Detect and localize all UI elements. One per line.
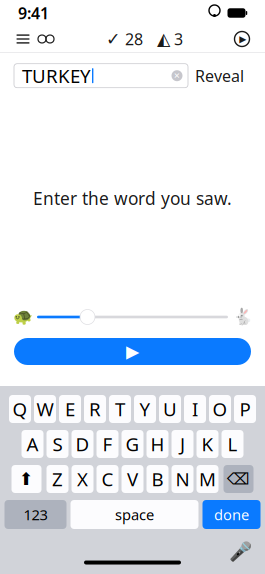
staticText: 123	[23, 505, 47, 524]
button[interactable]: space	[70, 500, 198, 529]
staticText: ✓	[106, 29, 121, 49]
button[interactable]: N	[171, 465, 193, 493]
staticText: T	[115, 397, 125, 421]
button[interactable]: R	[84, 395, 106, 423]
button[interactable]: W	[34, 395, 56, 423]
button[interactable]: Q	[9, 395, 31, 423]
button[interactable]: Shift	[11, 465, 41, 493]
button[interactable]: I	[184, 395, 206, 423]
button[interactable]: L	[221, 430, 243, 458]
staticText: C	[101, 467, 113, 491]
staticText: L	[227, 432, 237, 456]
staticText: V	[127, 467, 138, 491]
button[interactable]: F	[96, 430, 118, 458]
staticText: E	[65, 397, 75, 421]
button[interactable]: done	[202, 500, 260, 529]
button[interactable]: Menu	[12, 28, 34, 50]
button[interactable]: Play	[0, 338, 265, 365]
staticText: Enter the word you saw.	[33, 187, 232, 210]
staticText: P	[239, 397, 250, 421]
button[interactable]: J	[171, 430, 193, 458]
button[interactable]: 123	[4, 500, 66, 529]
button[interactable]: Repeat	[34, 28, 58, 50]
staticText: 3	[174, 28, 183, 50]
staticText: Reveal	[195, 65, 244, 86]
button[interactable]: H	[146, 430, 168, 458]
button[interactable]: X	[71, 465, 93, 493]
button[interactable]: P	[234, 395, 256, 423]
button[interactable]: Dictate	[227, 538, 253, 564]
staticText: N	[175, 467, 189, 491]
staticText: done	[214, 505, 249, 524]
staticText: ✕	[173, 71, 180, 80]
staticText: ▶	[126, 342, 139, 361]
staticText: 🐢	[12, 308, 32, 326]
staticText: I	[192, 397, 198, 421]
button[interactable]: C	[96, 465, 118, 493]
button[interactable]: Y	[134, 395, 156, 423]
staticText: ◭	[157, 29, 170, 49]
button[interactable]: Z	[46, 465, 68, 493]
staticText: space	[115, 505, 154, 524]
button[interactable]: M	[196, 465, 218, 493]
staticText: H	[150, 432, 164, 456]
staticText: J	[180, 432, 185, 456]
staticText: Q	[12, 397, 27, 421]
button[interactable]: U	[159, 395, 181, 423]
button[interactable]: S	[46, 430, 68, 458]
button[interactable]: Clear text	[168, 65, 186, 87]
staticText: 🎤	[228, 541, 251, 562]
staticText: F	[102, 432, 112, 456]
staticText: 🐇	[232, 308, 252, 326]
button[interactable]: Reveal	[188, 64, 251, 88]
staticText: 28	[125, 28, 143, 50]
button[interactable]: O	[209, 395, 231, 423]
button[interactable]: V	[121, 465, 143, 493]
staticText: W	[36, 397, 53, 421]
staticText: U	[163, 397, 177, 421]
button[interactable]: Play settings	[231, 28, 253, 50]
button[interactable]: E	[59, 395, 81, 423]
staticText: G	[125, 432, 139, 456]
button[interactable]: T	[109, 395, 131, 423]
staticText: ⬆	[19, 469, 34, 489]
button[interactable]: D	[71, 430, 93, 458]
staticText: ▶	[239, 34, 246, 44]
button[interactable]: B	[146, 465, 168, 493]
staticText: D	[75, 432, 89, 456]
button[interactable]: Delete	[223, 465, 253, 493]
button[interactable]: K	[196, 430, 218, 458]
staticText: R	[89, 397, 101, 421]
staticText: A	[26, 432, 38, 456]
staticText: Y	[139, 397, 150, 421]
staticText: B	[151, 467, 163, 491]
staticText: O	[212, 397, 227, 421]
button[interactable]: A	[21, 430, 43, 458]
button[interactable]: G	[121, 430, 143, 458]
staticText: S	[52, 432, 62, 456]
staticText: M	[199, 467, 216, 491]
staticText: Z	[52, 467, 63, 491]
staticText: 9:41	[18, 2, 49, 24]
staticText: K	[201, 432, 213, 456]
staticText: TURKEY	[22, 63, 91, 88]
staticText: X	[77, 467, 88, 491]
staticText: ⌫	[227, 470, 250, 488]
